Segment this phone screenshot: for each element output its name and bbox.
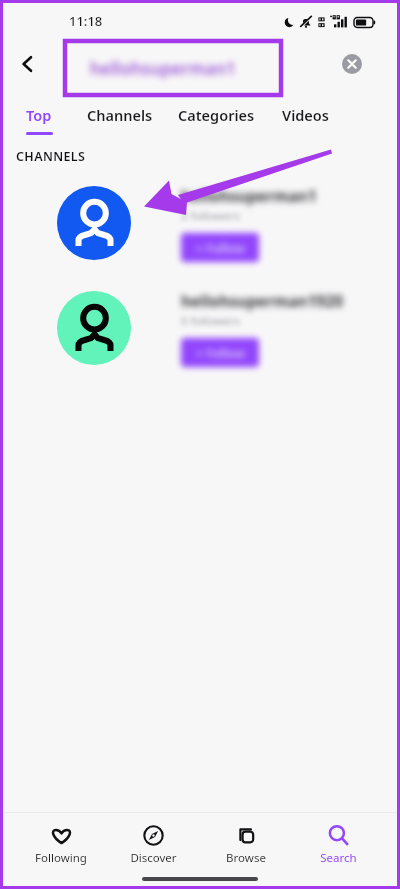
staticText: hellohsuperman1920 bbox=[181, 290, 344, 311]
button[interactable]: + Follow bbox=[181, 338, 259, 367]
staticText: 11:18 bbox=[69, 12, 103, 30]
button[interactable]: Discover bbox=[111, 817, 195, 869]
staticText: hellohsuperman1 bbox=[181, 185, 317, 206]
staticText: Categories bbox=[178, 105, 255, 125]
staticText: CHANNELS bbox=[16, 148, 86, 165]
button[interactable]: Top bbox=[12, 101, 66, 138]
button[interactable] bbox=[0, 281, 400, 383]
staticText: Browse bbox=[226, 850, 266, 866]
button[interactable]: Clear search bbox=[332, 44, 372, 84]
staticText: hellohsuperman1 bbox=[90, 57, 236, 80]
button[interactable]: Search bbox=[296, 817, 380, 869]
button[interactable]: Following bbox=[19, 817, 103, 869]
staticText: + Follow bbox=[196, 240, 245, 256]
button[interactable]: Browse bbox=[204, 817, 288, 869]
button[interactable]: hellohsuperman1 bbox=[64, 40, 282, 96]
staticText: Discover bbox=[130, 850, 177, 866]
button[interactable]: + Follow bbox=[181, 233, 259, 262]
button[interactable] bbox=[0, 176, 400, 278]
button[interactable]: Channels bbox=[66, 101, 174, 138]
staticText: Channels bbox=[87, 105, 153, 125]
staticText: 2 followers bbox=[181, 208, 240, 224]
button[interactable]: Categories bbox=[156, 101, 276, 138]
button[interactable]: Videos bbox=[262, 101, 348, 138]
button[interactable]: Back bbox=[7, 44, 47, 84]
staticText: Videos bbox=[282, 105, 329, 125]
staticText: 0 followers bbox=[181, 313, 240, 329]
staticText: Search bbox=[320, 850, 357, 866]
staticText: Following bbox=[35, 850, 87, 866]
staticText: Top bbox=[26, 105, 52, 125]
staticText: + Follow bbox=[196, 345, 245, 361]
